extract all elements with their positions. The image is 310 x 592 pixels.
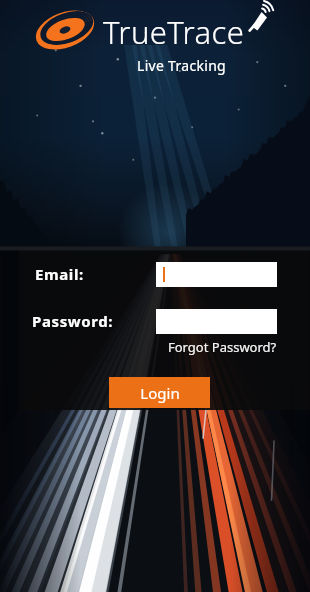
button[interactable]: Email input bbox=[156, 262, 277, 287]
other: Satellite bbox=[243, 3, 273, 33]
staticText: Password: bbox=[32, 311, 114, 331]
button[interactable]: Login bbox=[109, 377, 210, 408]
staticText: TrueTrace bbox=[103, 11, 245, 53]
staticText: Login bbox=[140, 383, 180, 403]
staticText: Forgot Password? bbox=[168, 338, 277, 356]
other: TrueTrace logo bbox=[32, 8, 98, 52]
button[interactable]: Forgot Password? bbox=[167, 337, 278, 357]
staticText: Email: bbox=[35, 264, 84, 284]
staticText: Live Tracking bbox=[137, 56, 227, 75]
